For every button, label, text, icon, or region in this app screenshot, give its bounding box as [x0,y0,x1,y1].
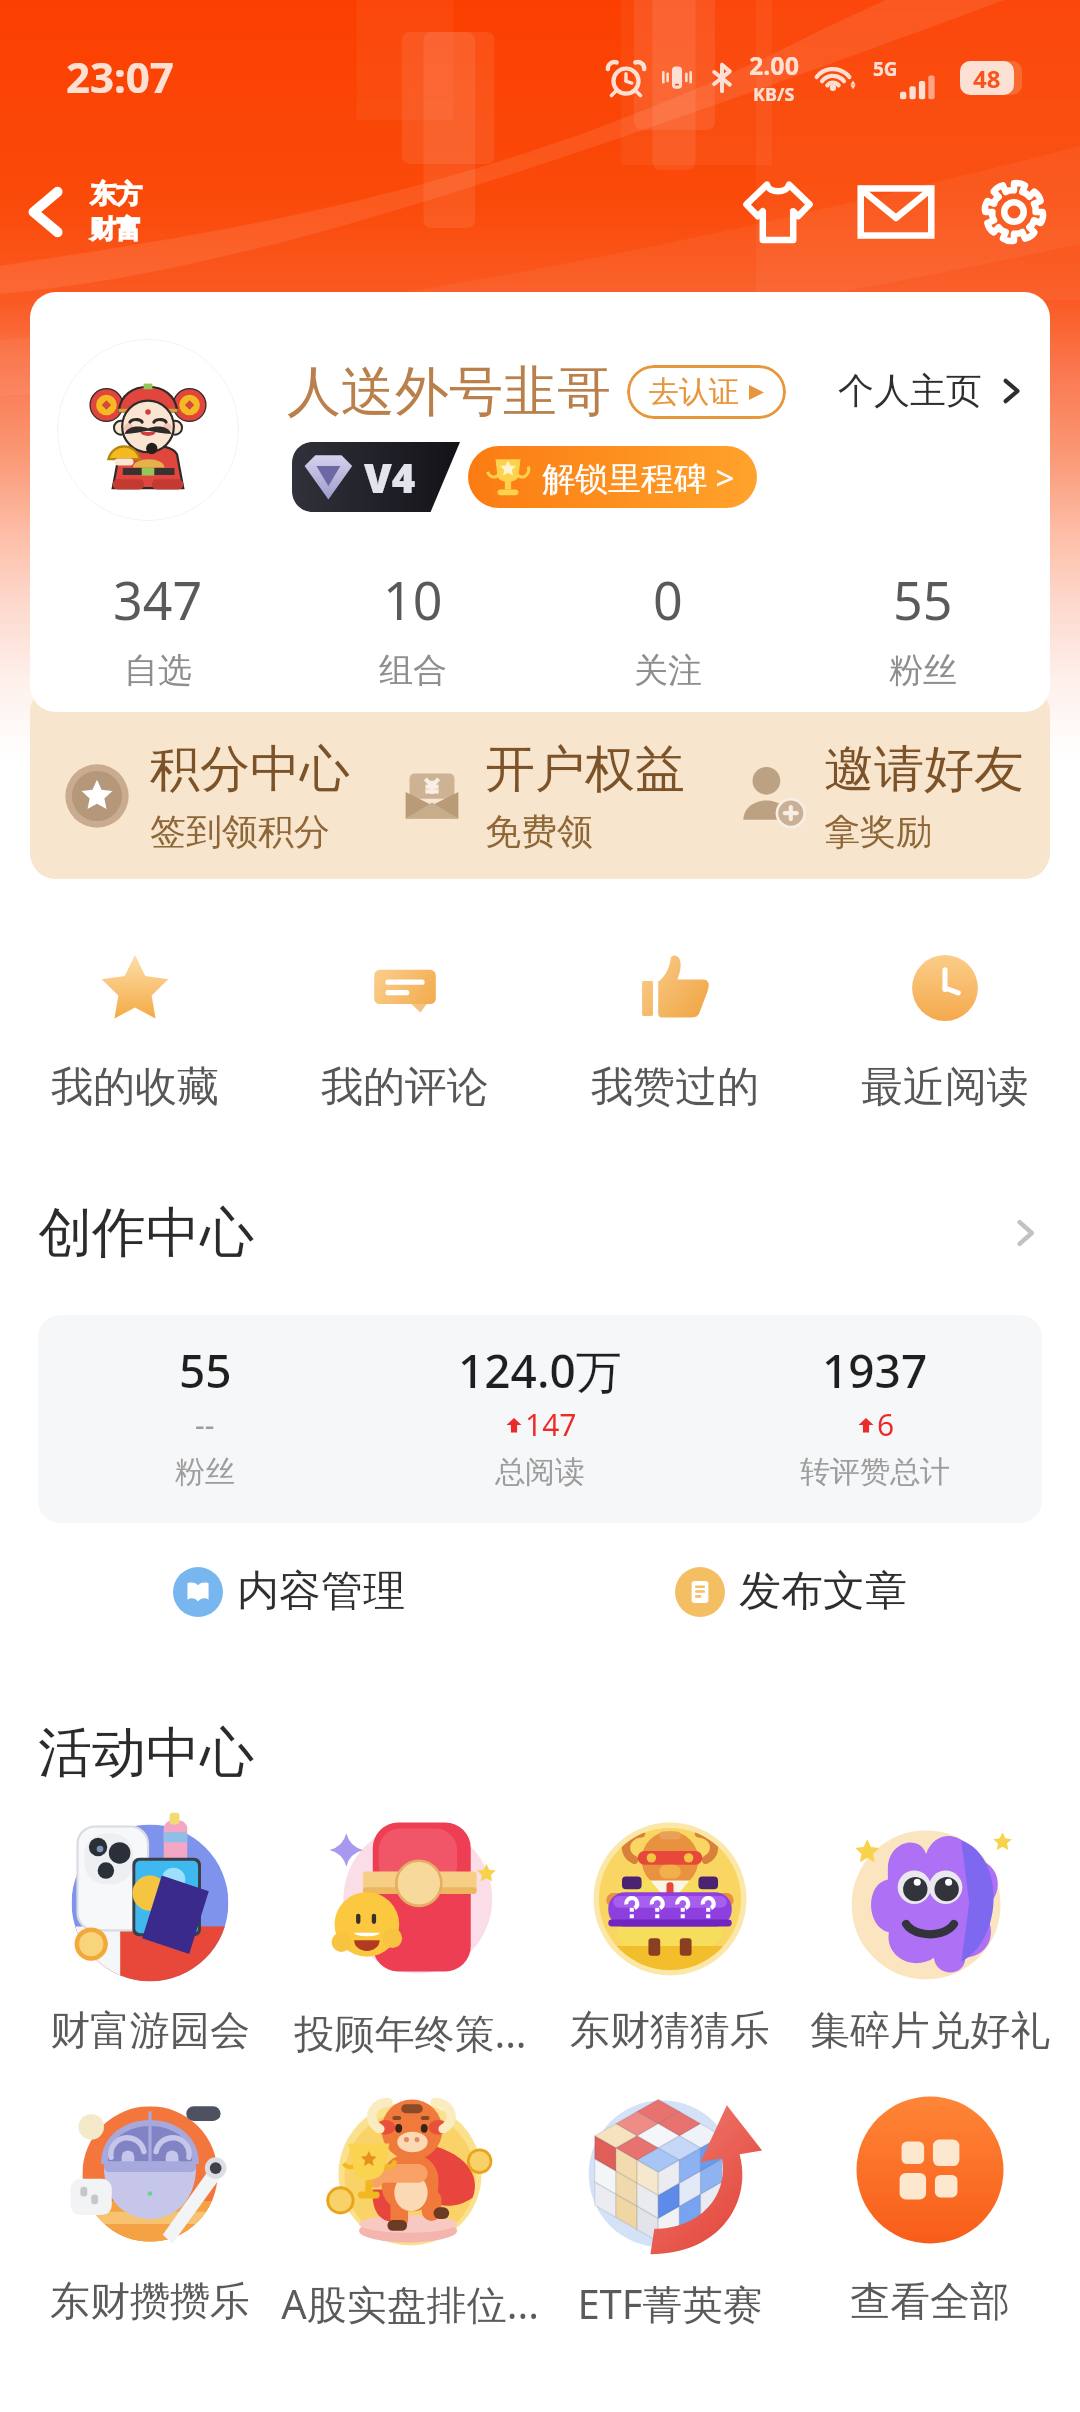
staticText: ETF菁英赛 [577,2276,763,2331]
staticText: 粉丝 [889,649,957,692]
staticText: 0 [653,564,683,635]
staticText: 发布文章 [739,1565,907,1618]
staticText: 我赞过的 [591,1061,759,1114]
button[interactable]: A股实盘排位... [280,2072,540,2331]
button[interactable]: 集碎片兑好礼 [800,1801,1060,2055]
button[interactable]: 查看全部 [800,2072,1060,2326]
staticText: 开户权益 [485,738,685,801]
staticText: 个人主页 [838,368,982,413]
button[interactable]: 东财攒攒乐 [20,2072,280,2326]
staticText: 东方 [90,178,142,211]
staticText: 23:07 [66,48,174,105]
staticText: 活动中心 [38,1719,254,1787]
button[interactable]: 发布文章 [667,1557,915,1626]
button[interactable]: Avatar [57,339,239,521]
staticText: 邀请好友 [824,738,1024,801]
staticText: 创作中心 [38,1199,254,1267]
staticText: 347 [113,564,203,635]
button[interactable]: 财富游园会 [20,1801,280,2055]
staticText: 组合 [379,649,447,692]
button[interactable]: ETF菁英赛 [540,2072,800,2331]
button[interactable]: 10 [285,564,540,692]
button[interactable]: 我赞过的 [540,953,810,1114]
button[interactable]: Shirt [730,164,826,260]
button[interactable]: 投顾年终策... [280,1801,540,2060]
button[interactable]: 解锁里程碑 > [468,446,757,508]
staticText: 转评赞总计 [800,1453,950,1491]
staticText: 1937 [822,1339,928,1402]
button[interactable]: 去认证 [627,365,786,419]
button[interactable]: 55 [795,564,1050,692]
button[interactable]: 邀请好友 [738,738,1050,854]
staticText: 自选 [124,649,192,692]
staticText: 最近阅读 [861,1061,1029,1114]
staticText: 去认证 [649,373,739,411]
button[interactable]: 我的收藏 [0,953,270,1114]
staticText: 粉丝 [175,1453,235,1491]
staticText: 48 [973,62,1001,95]
button[interactable]: 最近阅读 [810,953,1080,1114]
staticText: A股实盘排位... [281,2276,539,2331]
button[interactable]: 124.0万 [372,1339,707,1491]
staticText: V4 [364,450,416,504]
staticText: -- [195,1404,215,1445]
staticText: 6 [877,1404,895,1445]
staticText: 55 [179,1339,232,1402]
staticText: 积分中心 [150,738,350,801]
staticText: 查看全部 [850,2276,1010,2326]
button[interactable]: 347 [30,564,285,692]
button[interactable]: Settings [966,164,1062,260]
button[interactable]: 我的评论 [270,953,540,1114]
staticText: 10 [383,564,443,635]
staticText: 财富游园会 [50,2005,250,2055]
staticText: 内容管理 [237,1565,405,1618]
staticText: 147 [525,1404,577,1445]
staticText: 签到领积分 [150,809,330,854]
staticText: 集碎片兑好礼 [810,2005,1050,2055]
staticText: 我的评论 [321,1061,489,1114]
button[interactable]: Level V4 [292,442,460,512]
staticText: 免费领 [485,809,593,854]
staticText: 关注 [634,649,702,692]
button[interactable]: 开户权益 [399,738,710,854]
staticText: KB/S [753,82,795,107]
button[interactable]: 1937 [707,1339,1042,1491]
staticText: 东财攒攒乐 [50,2276,250,2326]
staticText: 124.0万 [458,1339,622,1402]
button[interactable]: 积分中心 [64,738,370,854]
staticText: 5G [873,56,898,82]
staticText: 我的收藏 [51,1061,219,1114]
button[interactable]: 东财猜猜乐 [540,1801,800,2055]
staticText: 人送外号韭哥 [287,358,611,426]
staticText: 财富 [90,213,142,246]
button[interactable]: 创作中心 [38,1199,1042,1267]
staticText: 东财猜猜乐 [570,2005,770,2055]
staticText: 总阅读 [495,1453,585,1491]
button[interactable]: 0 [540,564,795,692]
staticText: 2.00 [749,48,799,82]
button[interactable]: Messages [848,164,944,260]
button[interactable]: 55 [38,1339,372,1491]
button[interactable]: 个人主页 [830,360,1034,421]
staticText: 投顾年终策... [294,2005,527,2060]
staticText: 55 [893,564,953,635]
button[interactable]: 内容管理 [165,1557,413,1626]
staticText: 解锁里程碑 > [542,455,735,500]
button[interactable]: Back [4,170,88,254]
staticText: 拿奖励 [824,809,932,854]
